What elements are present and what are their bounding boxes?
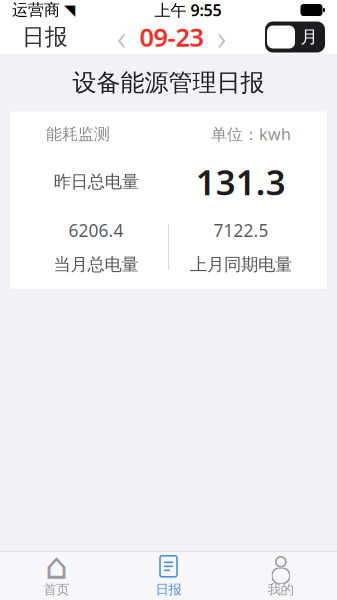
staticText: ‹ <box>117 14 126 60</box>
staticText: › <box>217 14 226 60</box>
staticText: 6206.4 <box>68 219 123 242</box>
button[interactable]: 后一天 <box>208 22 234 52</box>
staticText: 我的 <box>268 581 294 598</box>
staticText: 当月总电量 <box>53 254 138 275</box>
staticText: 日报 <box>155 581 181 598</box>
staticText: 设备能源管理日报 <box>72 68 264 97</box>
button[interactable]: 切换到月报 <box>265 21 325 52</box>
staticText: 5楼总配 <box>135 570 196 593</box>
staticText: 7122.5 <box>213 219 268 242</box>
staticText: 131.3 <box>196 159 286 205</box>
staticText: 上月同期电量 <box>190 254 292 275</box>
button[interactable]: 日报 <box>112 548 225 600</box>
staticText: 首页 <box>43 581 69 598</box>
button[interactable]: 前一天 <box>108 22 134 52</box>
staticText: 4 <box>42 570 52 593</box>
button[interactable]: 我的 <box>225 548 337 600</box>
staticText: ⌂ <box>45 546 68 587</box>
staticText: 能耗监测 <box>46 124 110 144</box>
staticText: 昨日总电量 <box>54 171 139 192</box>
staticText: 944.3 <box>264 570 309 593</box>
staticText: 4楼空调 (东) <box>119 539 212 562</box>
staticText: 09-23 <box>139 20 203 54</box>
staticText: 1029.9 <box>259 539 314 562</box>
staticText: 单位：kwh <box>211 123 291 145</box>
staticText: 月 <box>300 26 317 48</box>
staticText: 日报 <box>22 23 68 51</box>
staticText: ◥ <box>64 2 75 18</box>
staticText: 3 <box>42 539 52 562</box>
staticText: 运营商 <box>12 0 60 20</box>
button[interactable]: ⌂ <box>0 548 112 600</box>
staticText: 上午 9:55 <box>154 0 221 21</box>
